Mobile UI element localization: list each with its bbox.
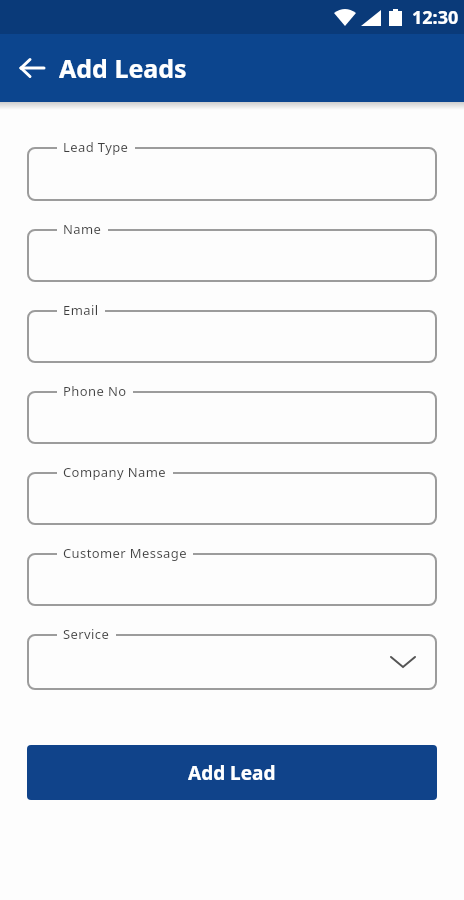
button[interactable] <box>27 553 437 606</box>
button[interactable] <box>27 391 437 444</box>
staticText: 12:30 <box>412 5 459 30</box>
staticText: Lead Type <box>63 138 129 156</box>
staticText: Company Name <box>63 463 167 481</box>
button[interactable] <box>27 310 437 363</box>
staticText: Phone No <box>63 382 127 400</box>
button[interactable]: Add Lead <box>27 745 437 800</box>
button[interactable] <box>27 229 437 282</box>
staticText: Service <box>63 625 110 643</box>
staticText: Add Lead <box>188 760 276 786</box>
staticText: Customer Message <box>63 544 187 562</box>
button[interactable] <box>27 147 437 201</box>
button[interactable] <box>27 634 437 690</box>
staticText: Name <box>63 220 102 238</box>
staticText: Email <box>63 301 99 319</box>
button[interactable] <box>11 46 55 90</box>
button[interactable] <box>27 472 437 525</box>
staticText: Add Leads <box>59 51 187 85</box>
